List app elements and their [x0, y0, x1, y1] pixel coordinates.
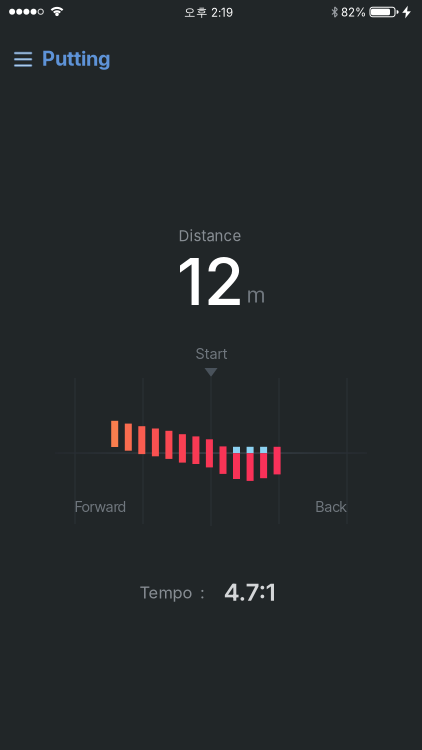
staticText: Back [316, 498, 347, 515]
staticText: 오후 2:19 [184, 5, 233, 20]
staticText: 82% [341, 5, 366, 19]
staticText: Tempo [139, 582, 192, 602]
staticText: Putting [42, 46, 111, 71]
staticText: m [247, 281, 265, 308]
staticText: 4.7:1 [224, 577, 276, 606]
staticText: 12 [177, 242, 244, 321]
staticText: : [200, 582, 205, 602]
button[interactable]: Menu [14, 52, 32, 67]
staticText: Forward [75, 498, 126, 515]
staticText: Distance [179, 227, 242, 245]
staticText: Start [196, 345, 228, 362]
